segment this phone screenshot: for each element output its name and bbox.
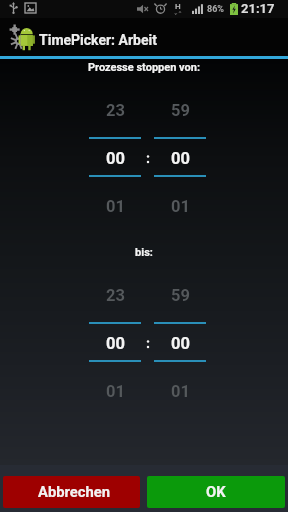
- staticText: 00: [171, 149, 190, 168]
- staticText: 01: [171, 197, 190, 216]
- staticText: 01: [106, 382, 125, 401]
- staticText: 23: [106, 101, 125, 120]
- staticText: 59: [171, 101, 190, 120]
- button[interactable]: 23: [89, 283, 141, 397]
- staticText: 59: [171, 286, 190, 305]
- staticText: 86%: [207, 4, 224, 15]
- staticText: 01: [171, 382, 190, 401]
- staticText: 23: [106, 286, 125, 305]
- button[interactable]: 59: [154, 283, 206, 397]
- staticText: 21:17: [241, 1, 275, 16]
- staticText: 01: [106, 197, 125, 216]
- staticText: TimePicker: Arbeit: [39, 32, 157, 48]
- button[interactable]: OK: [147, 476, 285, 508]
- staticText: OK: [206, 483, 226, 500]
- staticText: 00: [106, 334, 125, 353]
- staticText: H: [175, 2, 181, 11]
- button[interactable]: 59: [154, 98, 206, 212]
- staticText: bis:: [0, 246, 288, 259]
- staticText: Prozesse stoppen von:: [0, 61, 288, 74]
- button[interactable]: 23: [89, 98, 141, 212]
- staticText: 00: [171, 334, 190, 353]
- staticText: Abbrechen: [38, 483, 111, 500]
- button[interactable]: Abbrechen: [3, 476, 140, 508]
- staticText: 00: [106, 149, 125, 168]
